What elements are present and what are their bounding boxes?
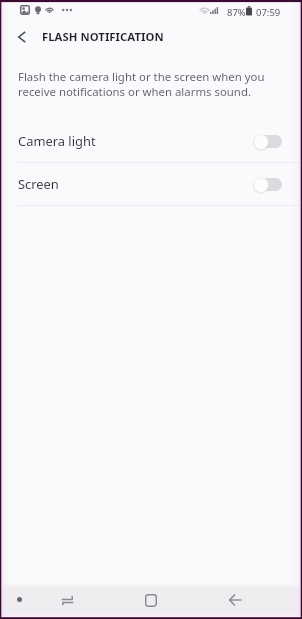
staticText: 87%: [227, 6, 246, 19]
button[interactable]: Camera light switch, off: [254, 133, 282, 149]
button[interactable]: Back: [213, 584, 257, 614]
button[interactable]: Recents: [45, 584, 89, 614]
staticText: Screen: [18, 175, 59, 193]
button[interactable]: Navigate up: [2, 20, 38, 54]
button[interactable]: Camera light: [2, 120, 300, 162]
button[interactable]: Home: [129, 584, 173, 614]
staticText: 07:59: [256, 6, 281, 19]
staticText: FLASH NOTIFICATION: [42, 29, 164, 44]
staticText: Flash the camera light or the screen whe…: [18, 69, 276, 99]
button[interactable]: Screen: [2, 163, 300, 205]
button[interactable]: Screen switch, off: [254, 176, 282, 192]
staticText: Camera light: [18, 132, 96, 150]
button[interactable]: Hide navigation bar: [2, 584, 36, 614]
